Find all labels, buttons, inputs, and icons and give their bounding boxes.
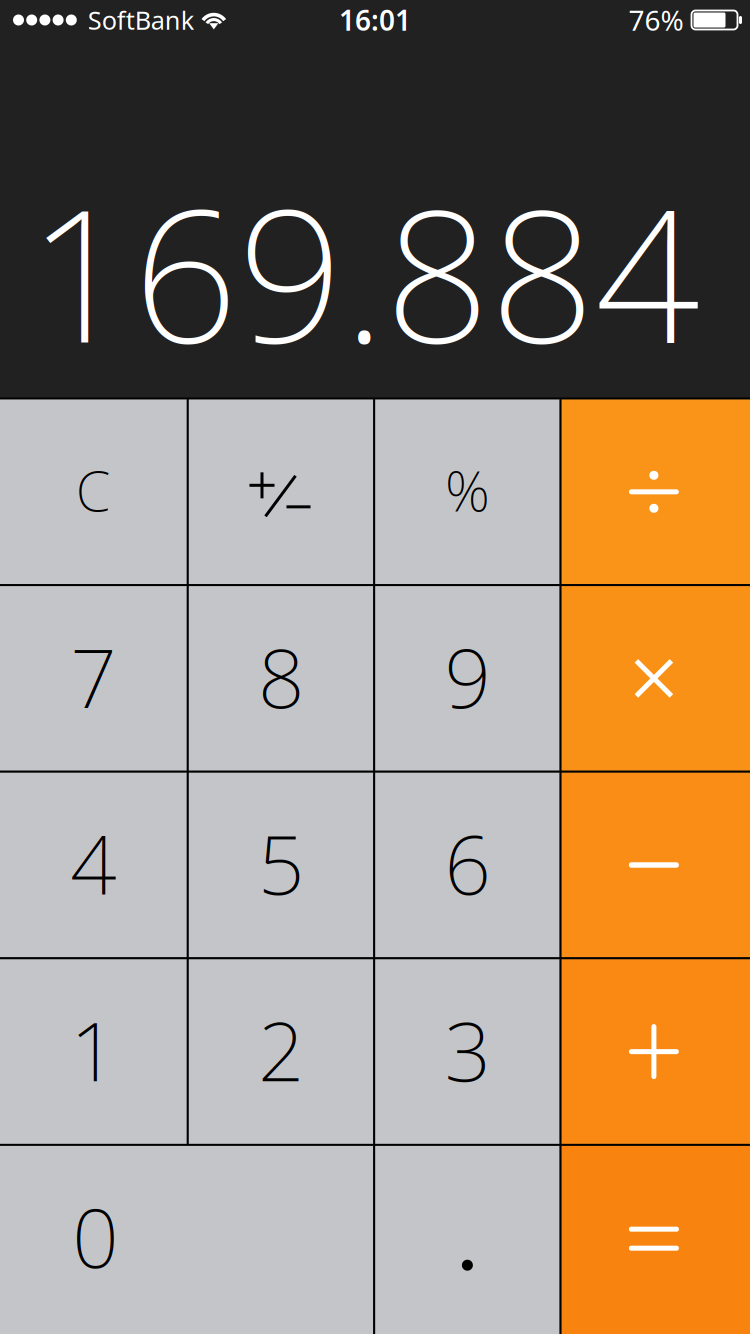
staticText: 2: [258, 996, 304, 1104]
staticText: 6: [444, 809, 490, 917]
button[interactable]: Add: [562, 959, 750, 1144]
staticText: 4: [70, 809, 116, 917]
button[interactable]: Subtract: [562, 773, 750, 957]
button[interactable]: Multiply: [562, 586, 750, 771]
button[interactable]: Divide: [562, 399, 750, 584]
button[interactable]: 2: [189, 959, 373, 1144]
button[interactable]: 5: [189, 773, 373, 957]
staticText: 169.884: [28, 149, 700, 393]
button[interactable]: Decimal point: [375, 1146, 560, 1334]
button[interactable]: 7: [0, 586, 187, 771]
staticText: 9: [444, 622, 490, 730]
staticText: 76%: [628, 1, 683, 39]
button[interactable]: 4: [0, 773, 187, 957]
button[interactable]: 0: [0, 1146, 373, 1334]
staticText: SoftBank: [88, 3, 195, 37]
staticText: 1: [70, 996, 116, 1104]
staticText: 16:01: [339, 1, 411, 39]
staticText: 7: [70, 622, 116, 730]
button[interactable]: C: [0, 399, 187, 584]
button[interactable]: Equals: [562, 1146, 750, 1334]
button[interactable]: Plus minus: [189, 399, 373, 584]
staticText: 0: [72, 1182, 118, 1290]
button[interactable]: 3: [375, 959, 560, 1144]
button[interactable]: 9: [375, 586, 560, 771]
staticText: 3: [444, 996, 490, 1104]
staticText: 5: [258, 809, 304, 917]
staticText: C: [76, 453, 111, 527]
button[interactable]: 1: [0, 959, 187, 1144]
button[interactable]: %: [375, 399, 560, 584]
button[interactable]: 8: [189, 586, 373, 771]
staticText: 8: [258, 622, 304, 730]
staticText: %: [445, 453, 490, 527]
button[interactable]: 6: [375, 773, 560, 957]
